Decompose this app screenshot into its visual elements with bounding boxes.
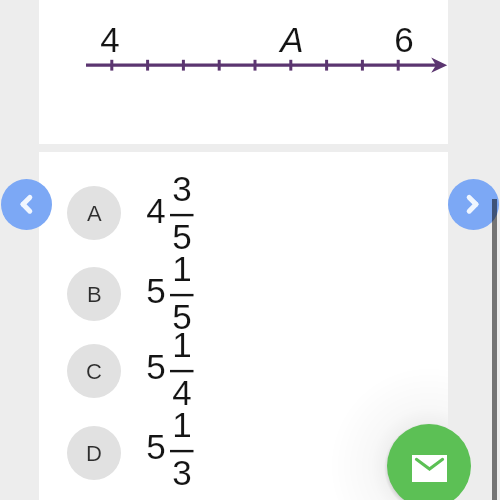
button[interactable]: D xyxy=(67,426,121,480)
staticText: 1 xyxy=(172,249,192,288)
staticText: 5 xyxy=(146,427,166,466)
staticText: D xyxy=(86,441,102,466)
staticText: 4 xyxy=(100,20,120,59)
staticText: B xyxy=(87,282,102,307)
button[interactable]: Next question xyxy=(448,179,499,230)
staticText: 4 xyxy=(146,191,166,230)
button[interactable]: Compose email xyxy=(387,424,471,500)
staticText: 5 xyxy=(146,347,166,386)
staticText: 4 xyxy=(172,373,192,412)
staticText: 5 xyxy=(172,297,192,336)
staticText: 3 xyxy=(172,453,192,492)
button[interactable]: Previous question xyxy=(1,179,52,230)
staticText: 1 xyxy=(172,325,192,364)
button[interactable]: B xyxy=(67,267,121,321)
button[interactable]: C xyxy=(67,344,121,398)
staticText: A xyxy=(280,20,304,59)
staticText: 5 xyxy=(172,217,192,256)
staticText: C xyxy=(86,359,102,384)
staticText: 3 xyxy=(172,169,192,208)
staticText: A xyxy=(87,201,102,226)
staticText: 6 xyxy=(394,20,414,59)
button[interactable]: A xyxy=(67,186,121,240)
staticText: 5 xyxy=(146,271,166,310)
staticText: 1 xyxy=(172,405,192,444)
